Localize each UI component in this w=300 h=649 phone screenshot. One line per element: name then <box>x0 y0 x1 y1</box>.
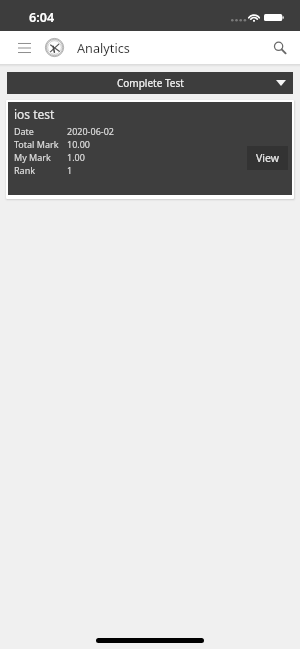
staticText: Date <box>14 125 67 137</box>
staticText: 2020-06-02 <box>67 125 114 137</box>
button[interactable]: Menu <box>12 35 36 61</box>
staticText: View <box>256 151 279 165</box>
staticText: My Mark <box>14 151 67 163</box>
staticText: ios test <box>14 106 55 122</box>
staticText: Total Mark <box>14 138 67 150</box>
staticText: 1.00 <box>67 151 85 163</box>
button[interactable]: View <box>247 146 288 170</box>
staticText: 1 <box>67 164 73 176</box>
button[interactable]: ios test <box>8 102 292 195</box>
staticText: Analytics <box>77 39 130 56</box>
button[interactable]: Complete Test <box>7 72 293 94</box>
staticText: 6:04 <box>29 9 55 26</box>
staticText: Rank <box>14 164 67 176</box>
staticText: 10.00 <box>67 138 91 150</box>
staticText: Complete Test <box>117 76 184 90</box>
button[interactable]: Search <box>268 35 292 61</box>
